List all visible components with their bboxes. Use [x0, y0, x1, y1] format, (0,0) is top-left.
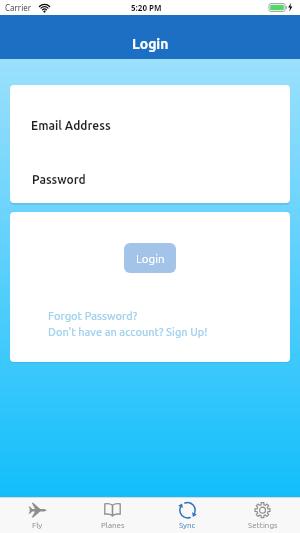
staticText: Carrier [5, 2, 32, 13]
button[interactable]: Password [10, 161, 290, 197]
staticText: Fly [32, 521, 43, 530]
staticText: Email Address [31, 119, 111, 132]
staticText: Forgot Password? [48, 310, 138, 322]
button[interactable]: Email Address [10, 107, 290, 143]
button[interactable]: Sync [150, 498, 225, 533]
staticText: Planes [101, 521, 125, 530]
button[interactable]: Settings [225, 498, 300, 533]
staticText: Login [132, 36, 169, 52]
staticText: Settings [248, 521, 278, 530]
button[interactable]: Login [124, 243, 176, 273]
staticText: Don't have an account? Sign Up! [48, 326, 208, 338]
button[interactable]: Planes [75, 498, 150, 533]
button[interactable]: Don't have an account? Sign Up! [48, 326, 208, 338]
staticText: 5:20 PM [131, 2, 162, 13]
button[interactable]: Forgot Password? [48, 310, 138, 322]
staticText: Password [32, 173, 86, 186]
button[interactable]: Fly [0, 498, 75, 533]
staticText: Sync [179, 521, 196, 530]
staticText: Login [136, 252, 165, 265]
